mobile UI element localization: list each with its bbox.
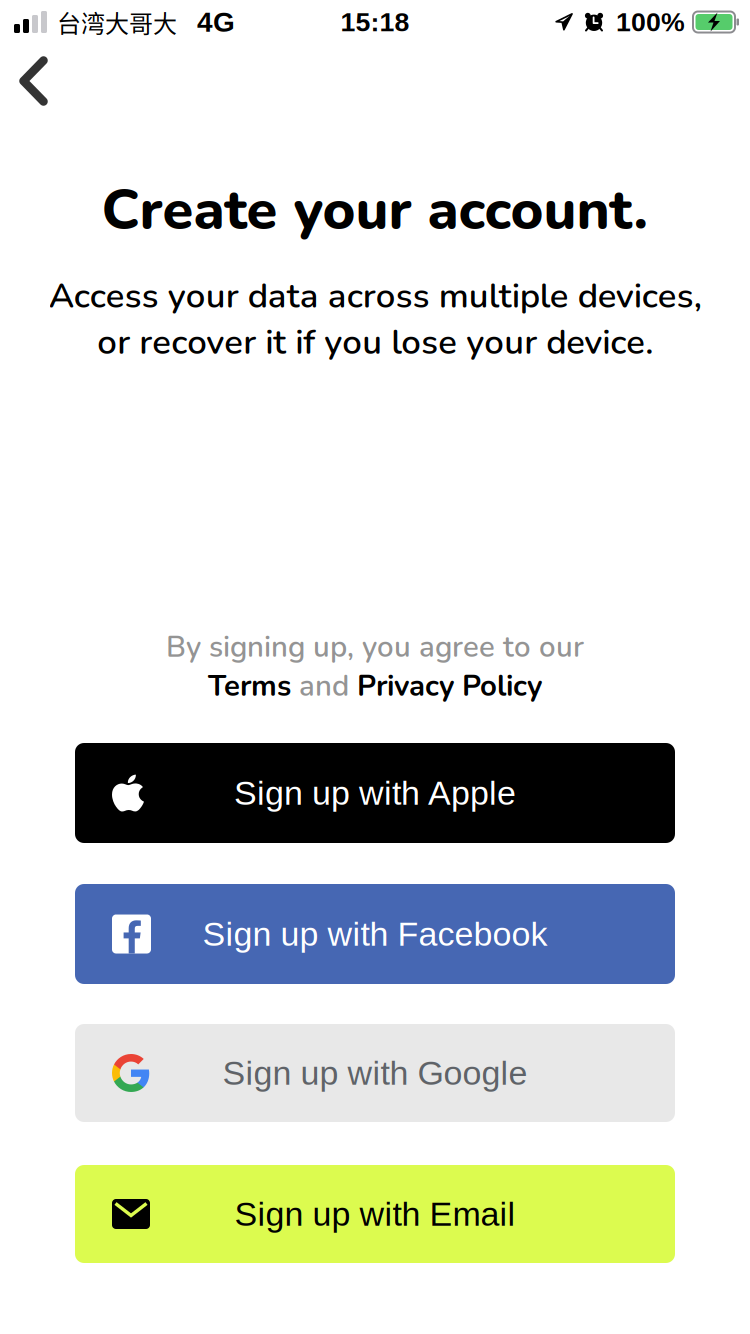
staticText: 100% [616, 7, 685, 37]
staticText: Privacy Policy [357, 666, 542, 706]
staticText: Sign up with Google [222, 1054, 527, 1092]
staticText: Sign up with Facebook [202, 915, 547, 953]
button[interactable]: Sign up with Email [75, 1165, 675, 1263]
button[interactable]: Back [0, 44, 64, 114]
button[interactable]: Sign up with Facebook [75, 884, 675, 984]
staticText: 4G [197, 6, 235, 38]
staticText: Sign up with Apple [234, 774, 516, 812]
staticText: Access your data across multiple devices… [48, 272, 701, 366]
staticText: 15:18 [340, 7, 409, 37]
button[interactable]: Terms [208, 666, 291, 706]
staticText: 台湾大哥大 [57, 5, 177, 39]
button[interactable]: Sign up with Apple [75, 743, 675, 843]
button[interactable]: Sign up with Google [75, 1024, 675, 1122]
staticText: By signing up, you agree to our [166, 627, 584, 667]
staticText: and [291, 666, 357, 706]
staticText: Terms [208, 666, 291, 706]
staticText: Sign up with Email [234, 1195, 515, 1233]
button[interactable]: Privacy Policy [357, 666, 542, 706]
staticText: Create your account. [101, 172, 648, 248]
